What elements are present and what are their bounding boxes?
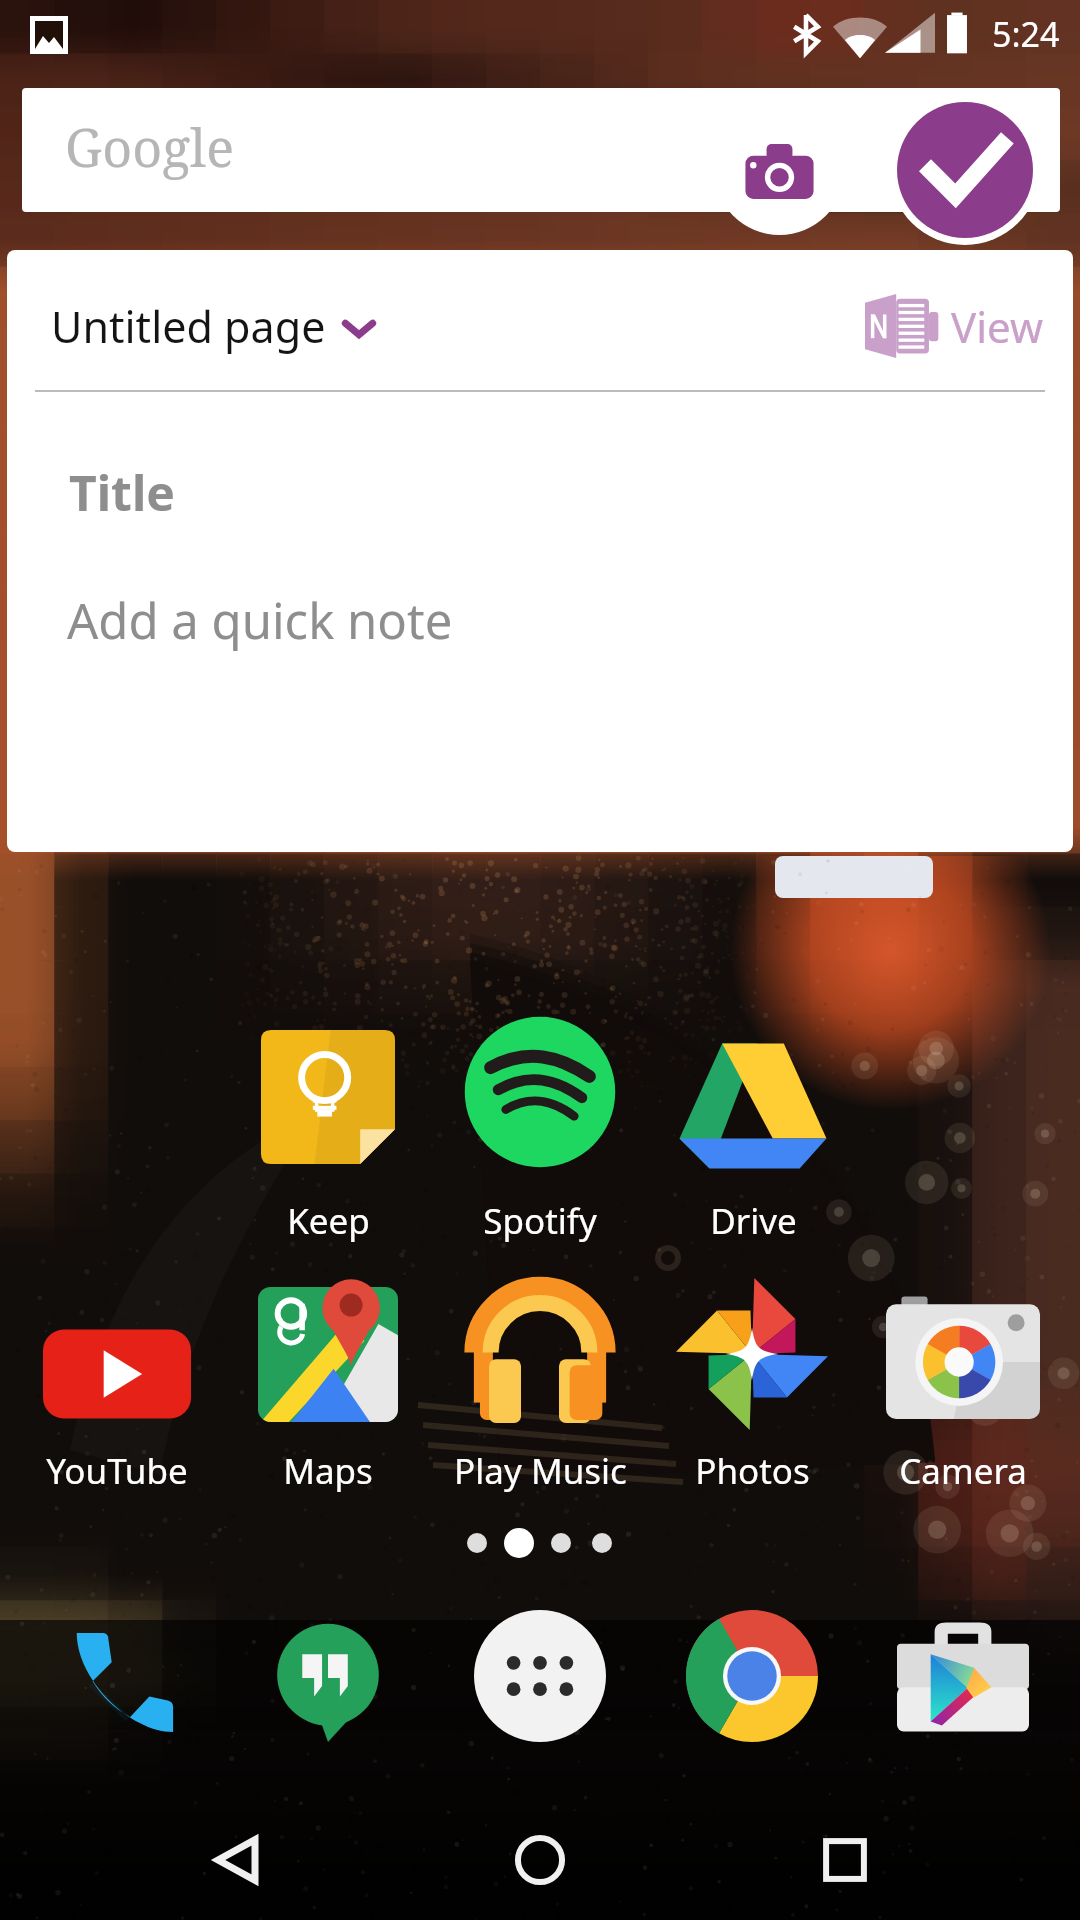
- button[interactable]: Play Store: [897, 1610, 1029, 1742]
- button[interactable]: Phone: [51, 1610, 183, 1742]
- staticText: Google: [65, 111, 235, 182]
- button[interactable]: Home: [495, 1815, 585, 1905]
- staticText: 5:24: [992, 11, 1060, 57]
- button[interactable]: YouTube: [11, 1300, 223, 1505]
- staticText: Drive: [710, 1197, 797, 1245]
- staticText: Keep: [287, 1197, 370, 1245]
- button[interactable]: Photos: [646, 1278, 858, 1505]
- button[interactable]: All apps: [474, 1610, 606, 1742]
- button[interactable]: Maps: [222, 1282, 434, 1505]
- staticText: Title: [69, 460, 175, 525]
- button[interactable]: Hangouts: [262, 1610, 394, 1742]
- staticText: Spotify: [483, 1197, 597, 1245]
- button[interactable]: Untitled page: [51, 297, 378, 356]
- staticText: Maps: [283, 1447, 373, 1495]
- button[interactable]: Recent apps: [800, 1815, 890, 1905]
- button[interactable]: Keep: [222, 1030, 434, 1255]
- button[interactable]: Save note: [897, 102, 1033, 238]
- button[interactable]: Camera: [857, 1285, 1069, 1505]
- button[interactable]: Play Music: [434, 1281, 646, 1505]
- staticText: Play Music: [454, 1447, 627, 1495]
- button[interactable]: Spotify: [434, 1016, 646, 1255]
- button[interactable]: Camera search: [714, 104, 845, 235]
- button[interactable]: Chrome: [686, 1610, 818, 1742]
- staticText: View: [951, 298, 1043, 355]
- button[interactable]: Drive: [647, 1027, 859, 1255]
- staticText: Camera: [899, 1447, 1027, 1495]
- button[interactable]: View: [865, 294, 1043, 358]
- staticText: Photos: [695, 1447, 810, 1495]
- staticText: YouTube: [46, 1447, 188, 1495]
- button[interactable]: Google: [22, 88, 1060, 212]
- button[interactable]: Back: [192, 1815, 282, 1905]
- staticText: Untitled page: [51, 297, 326, 356]
- staticText: Add a quick note: [67, 587, 453, 654]
